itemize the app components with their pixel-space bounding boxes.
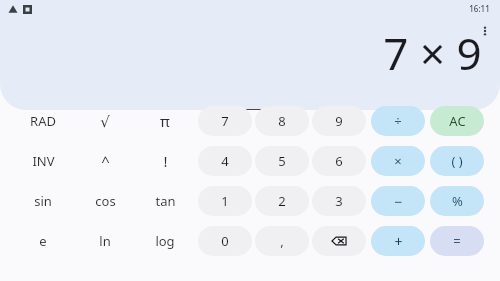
button[interactable]: 6: [312, 146, 366, 176]
staticText: tan: [155, 192, 176, 210]
staticText: 8: [278, 112, 286, 130]
button[interactable]: AC: [430, 106, 484, 136]
staticText: 1: [221, 192, 229, 210]
staticText: ^: [101, 151, 110, 171]
button[interactable]: −: [371, 186, 425, 216]
button[interactable]: ×: [371, 146, 425, 176]
button[interactable]: cos: [78, 186, 132, 216]
button[interactable]: π: [138, 106, 192, 136]
staticText: cos: [95, 192, 116, 210]
button[interactable]: ln: [78, 226, 132, 256]
staticText: 0: [221, 232, 229, 250]
button[interactable]: +: [371, 226, 425, 256]
staticText: RAD: [30, 112, 56, 130]
button[interactable]: 2: [255, 186, 309, 216]
staticText: sin: [34, 192, 52, 210]
button[interactable]: INV: [16, 146, 70, 176]
staticText: π: [160, 111, 170, 131]
button[interactable]: 5: [255, 146, 309, 176]
button[interactable]: 7: [198, 106, 252, 136]
staticText: ln: [99, 232, 111, 250]
staticText: 16:11: [469, 3, 490, 14]
staticText: −: [394, 192, 403, 211]
staticText: ×: [394, 152, 402, 170]
button[interactable]: ( ): [430, 146, 484, 176]
button[interactable]: !: [138, 146, 192, 176]
staticText: e: [39, 232, 47, 250]
staticText: 5: [278, 152, 286, 170]
staticText: !: [163, 151, 168, 171]
staticText: 9: [335, 112, 343, 130]
staticText: 6: [335, 152, 343, 170]
button[interactable]: e: [16, 226, 70, 256]
staticText: 4: [221, 152, 229, 170]
staticText: =: [453, 232, 461, 250]
button[interactable]: More options: [470, 16, 500, 46]
button[interactable]: Backspace: [312, 226, 366, 256]
staticText: 3: [335, 192, 343, 210]
staticText: √: [100, 113, 110, 130]
staticText: 7: [221, 112, 229, 130]
staticText: %: [452, 192, 463, 210]
button[interactable]: 3: [312, 186, 366, 216]
button[interactable]: ÷: [371, 106, 425, 136]
button[interactable]: RAD: [16, 106, 70, 136]
staticText: 2: [278, 192, 286, 210]
staticText: log: [155, 232, 175, 250]
staticText: ,: [280, 232, 284, 250]
button[interactable]: 8: [255, 106, 309, 136]
button[interactable]: 0: [198, 226, 252, 256]
button[interactable]: %: [430, 186, 484, 216]
button[interactable]: 9: [312, 106, 366, 136]
staticText: +: [394, 232, 403, 251]
button[interactable]: √: [78, 106, 132, 136]
staticText: INV: [32, 152, 55, 170]
staticText: ( ): [451, 152, 463, 170]
staticText: AC: [449, 112, 466, 130]
staticText: 7 × 9: [383, 23, 482, 83]
button[interactable]: 4: [198, 146, 252, 176]
button[interactable]: ^: [78, 146, 132, 176]
button[interactable]: log: [138, 226, 192, 256]
button[interactable]: Drag handle: [237, 109, 263, 110]
button[interactable]: sin: [16, 186, 70, 216]
button[interactable]: ,: [255, 226, 309, 256]
button[interactable]: =: [430, 226, 484, 256]
button[interactable]: tan: [138, 186, 192, 216]
staticText: ÷: [394, 112, 402, 130]
button[interactable]: 1: [198, 186, 252, 216]
